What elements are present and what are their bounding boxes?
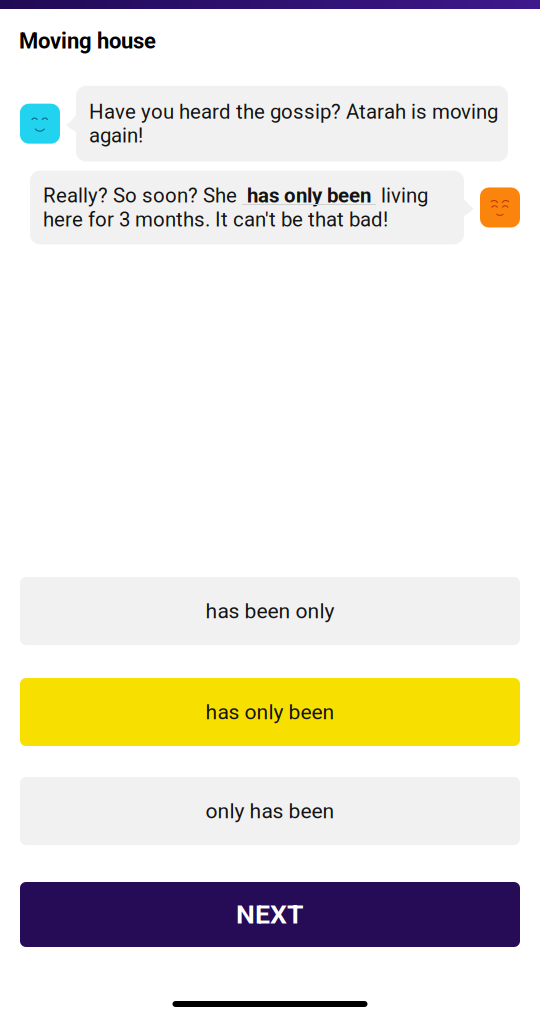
staticText: Have you heard the gossip? Atarah is mov… <box>89 100 498 148</box>
button[interactable]: only has been <box>20 777 520 845</box>
staticText: only has been <box>205 799 334 823</box>
button[interactable]: has been only <box>20 577 520 645</box>
button[interactable]: has only been <box>20 678 520 746</box>
button[interactable]: NEXT <box>20 882 520 947</box>
staticText: has been only <box>205 599 334 623</box>
staticText: Really? So soon? She has only been livin… <box>43 184 428 231</box>
staticText: Moving house <box>19 28 156 54</box>
staticText: NEXT <box>236 899 304 930</box>
staticText: has only been <box>205 700 334 724</box>
